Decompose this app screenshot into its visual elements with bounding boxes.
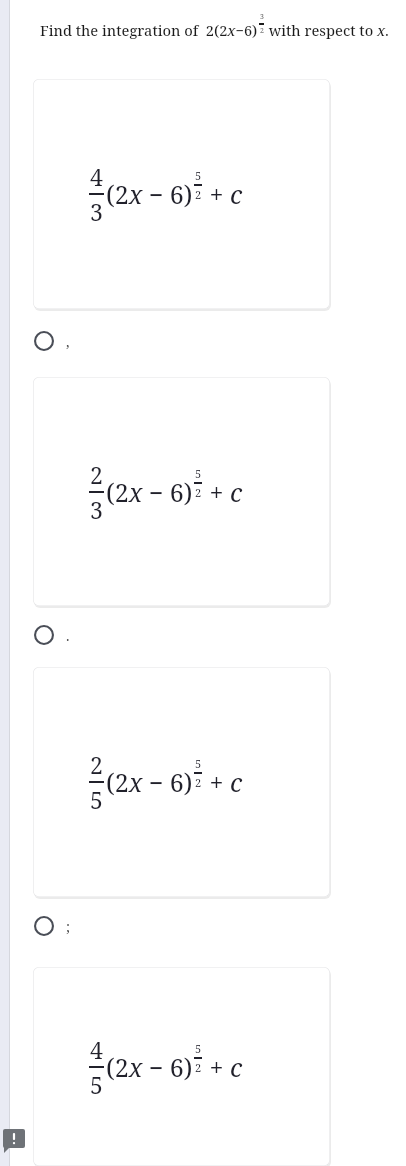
staticText: (2x − 6) — [106, 177, 193, 211]
staticText: 2 — [90, 749, 103, 780]
staticText: (2x−6) — [214, 20, 258, 40]
staticText: 2 — [90, 459, 103, 490]
staticText: 5 — [195, 756, 202, 771]
button[interactable]: Select option 2 — [33, 622, 153, 648]
button[interactable]: 2 — [33, 377, 330, 606]
button[interactable]: Feedback — [3, 1129, 27, 1155]
staticText: 3 — [90, 494, 103, 525]
staticText: 2 — [260, 26, 264, 36]
staticText: 2 — [195, 485, 202, 500]
staticText: 2 — [195, 775, 202, 790]
staticText: + c — [203, 765, 243, 799]
staticText: 2 — [195, 1060, 202, 1075]
staticText: , — [66, 332, 70, 351]
staticText: + c — [203, 475, 243, 509]
staticText: ; — [66, 917, 71, 936]
button[interactable]: Select option 1 — [33, 328, 153, 354]
staticText: . — [66, 626, 70, 645]
staticText: 4 — [90, 1034, 103, 1065]
staticText: 5 — [195, 168, 202, 183]
button[interactable]: 2 — [33, 667, 330, 897]
staticText: 5 — [195, 466, 202, 481]
staticText: (2x − 6) — [106, 475, 193, 509]
staticText: with respect to x. — [265, 20, 389, 40]
button[interactable]: 4 — [33, 79, 330, 309]
staticText: 2 — [195, 187, 202, 202]
button[interactable]: 4 — [33, 967, 330, 1166]
staticText: + c — [203, 177, 243, 211]
staticText: (2x − 6) — [106, 765, 193, 799]
staticText: + c — [203, 1050, 243, 1084]
staticText: 4 — [90, 161, 103, 192]
staticText: 5 — [90, 784, 103, 815]
button[interactable]: Select option 3 — [33, 913, 153, 939]
staticText: (2x − 6) — [106, 1050, 193, 1084]
staticText: 5 — [195, 1041, 202, 1056]
staticText: Find the integration of 2 — [40, 20, 214, 40]
staticText: 5 — [90, 1069, 103, 1100]
staticText: 3 — [90, 196, 103, 227]
staticText: 3 — [260, 12, 264, 22]
